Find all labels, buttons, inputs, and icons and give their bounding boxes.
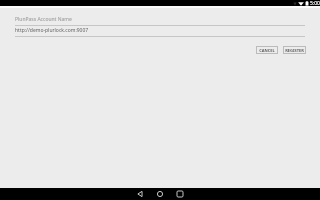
button[interactable]: http://demo-plurlock.com:9007 — [15, 26, 305, 37]
button[interactable]: PlunPass Account Name — [15, 13, 305, 26]
button[interactable]: CANCEL — [256, 46, 278, 54]
button[interactable]: Home — [150, 188, 170, 200]
button[interactable]: Recents — [170, 188, 190, 200]
staticText: PlunPass Account Name — [15, 16, 72, 23]
button[interactable]: REGISTER — [283, 46, 306, 54]
staticText: http://demo-plurlock.com:9007 — [15, 27, 89, 34]
button[interactable]: Back — [130, 188, 150, 200]
staticText: REGISTER — [285, 48, 304, 53]
staticText: 5:00 — [310, 0, 320, 6]
staticText: CANCEL — [259, 48, 275, 53]
